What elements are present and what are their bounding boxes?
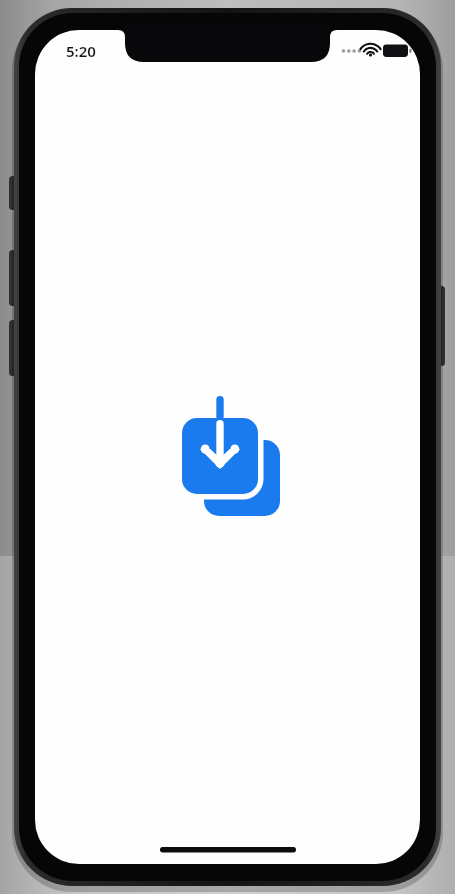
button[interactable]: Save to collection bbox=[176, 392, 288, 502]
staticText: 5:20 bbox=[66, 41, 96, 61]
